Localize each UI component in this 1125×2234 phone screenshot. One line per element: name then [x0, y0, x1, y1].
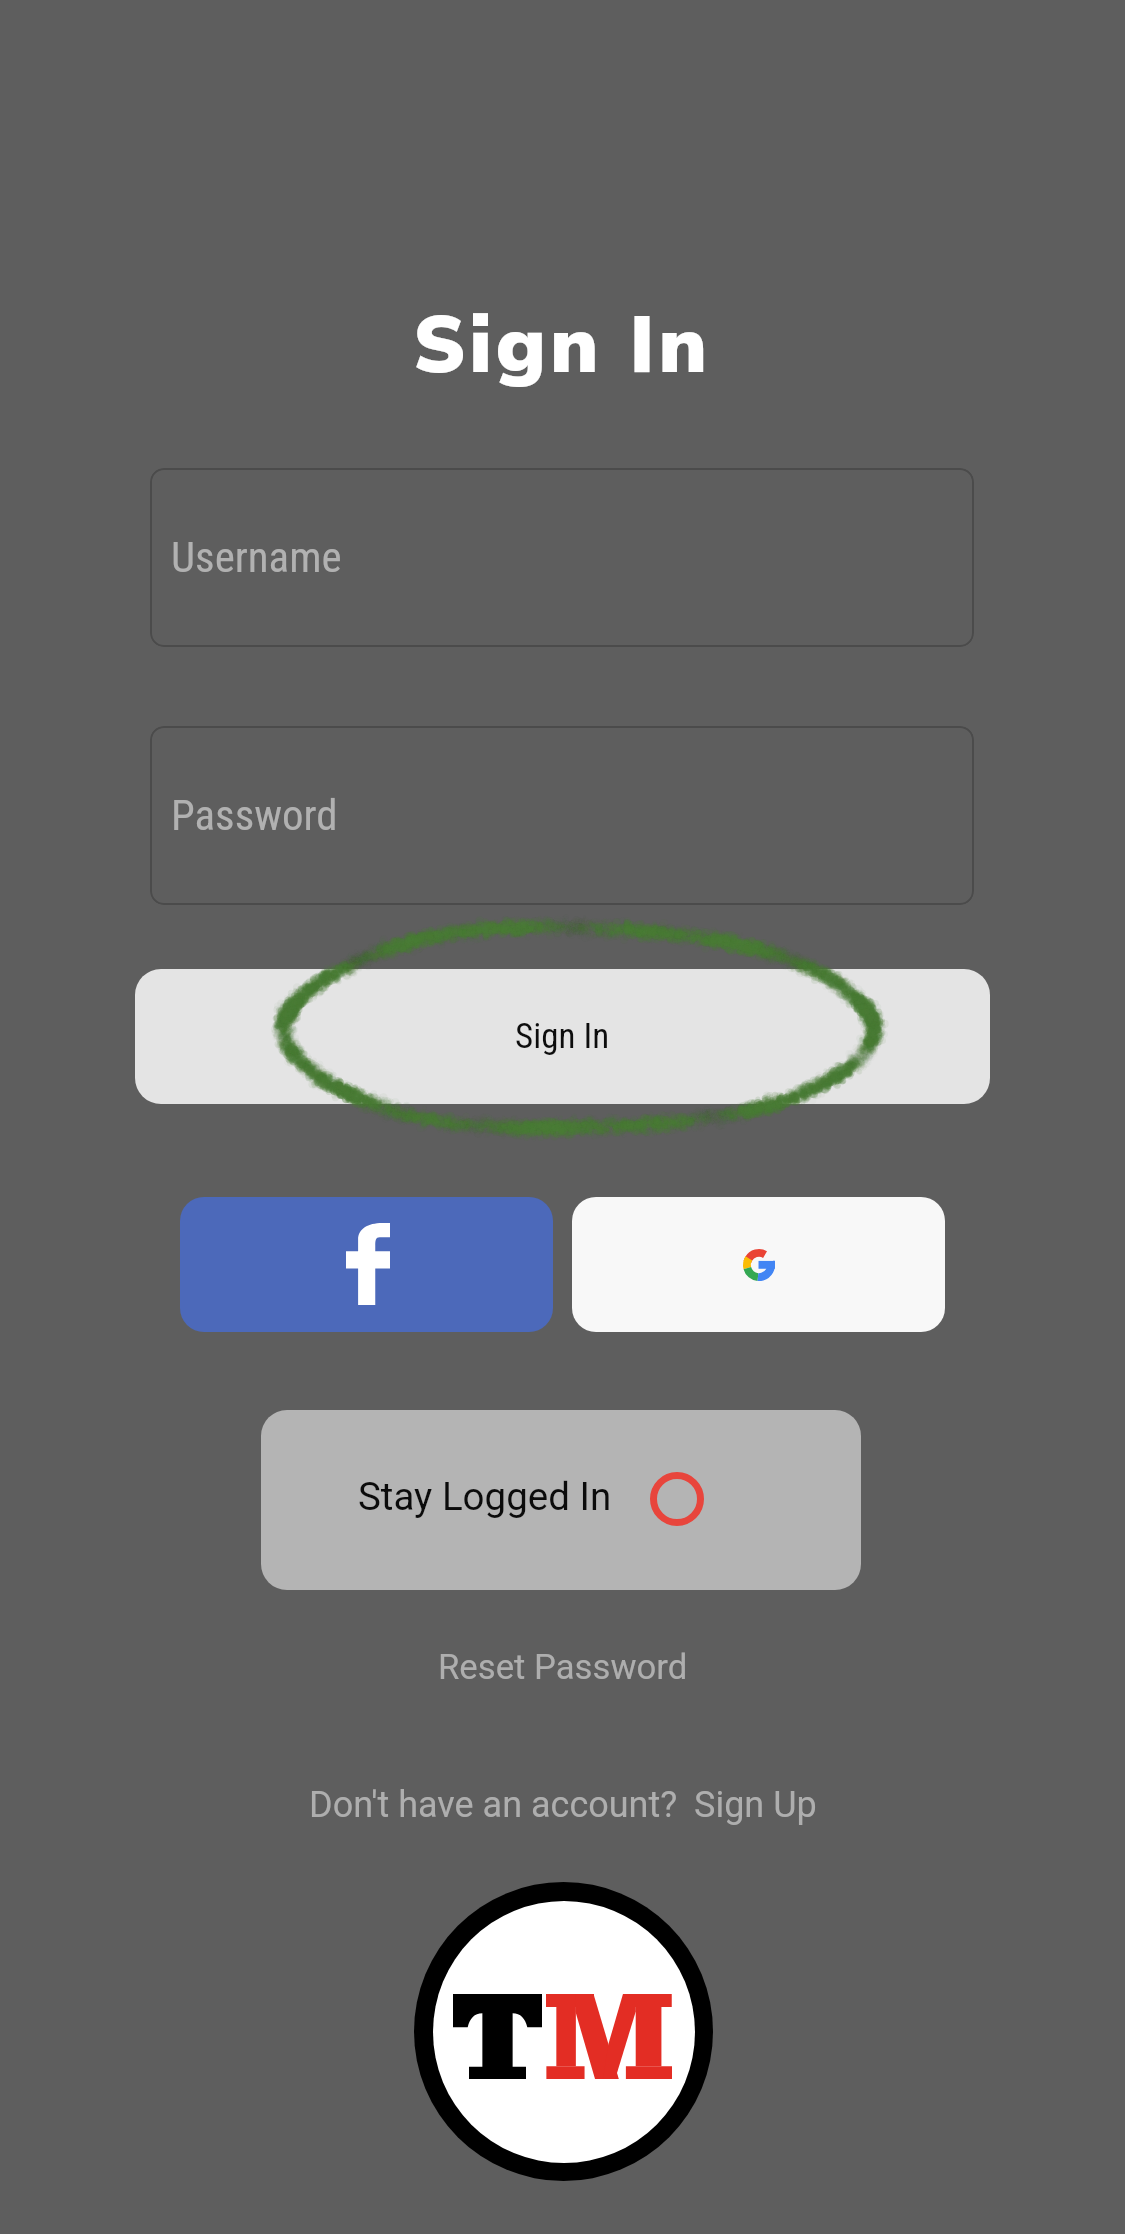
staticText: Stay Logged In: [358, 1474, 612, 1519]
button[interactable]: Sign in with Google: [572, 1197, 945, 1332]
button[interactable]: Sign In: [135, 969, 990, 1104]
other: TM logo: [414, 1882, 713, 2181]
staticText: Username: [171, 532, 342, 582]
staticText: Sign In: [413, 291, 712, 400]
staticText: Sign In: [515, 1016, 610, 1057]
button[interactable]: Stay Logged In: [261, 1410, 861, 1590]
staticText: Don't have an account?: [309, 1784, 678, 1826]
button[interactable]: Username: [150, 468, 974, 647]
staticText: Password: [171, 790, 338, 840]
button[interactable]: Sign in with Facebook: [180, 1197, 553, 1332]
button[interactable]: Password: [150, 726, 974, 905]
button[interactable]: Reset Password: [438, 1647, 688, 1688]
button[interactable]: Sign Up: [694, 1784, 817, 1826]
